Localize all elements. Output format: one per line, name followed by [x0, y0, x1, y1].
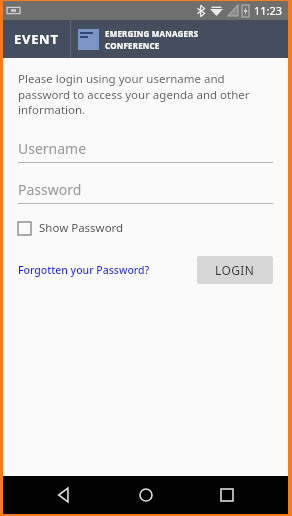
staticText: EVENT — [14, 30, 59, 48]
button[interactable]: Recent apps — [207, 476, 247, 514]
button[interactable]: EVENT — [3, 20, 70, 58]
button[interactable]: Forgotten your Password? — [18, 259, 150, 281]
button[interactable]: Password — [18, 180, 273, 204]
staticText: Please login using your username and pas… — [18, 71, 273, 117]
staticText: Forgotten your Password? — [18, 263, 150, 277]
staticText: Show Password — [39, 220, 124, 236]
button[interactable]: EMERGING MANAGERS — [78, 28, 199, 51]
button[interactable]: Show Password — [18, 220, 124, 236]
staticText: Username — [18, 139, 87, 158]
button[interactable]: Home — [126, 476, 166, 514]
staticText: Password — [18, 180, 82, 199]
staticText: EMERGING MANAGERS — [105, 28, 199, 39]
staticText: LOGIN — [215, 262, 255, 278]
button[interactable]: Username — [18, 139, 273, 163]
staticText: 11:23 — [254, 3, 283, 18]
button[interactable]: LOGIN — [197, 256, 273, 284]
button[interactable]: Back — [44, 476, 84, 514]
staticText: CONFERENCE — [105, 40, 160, 51]
